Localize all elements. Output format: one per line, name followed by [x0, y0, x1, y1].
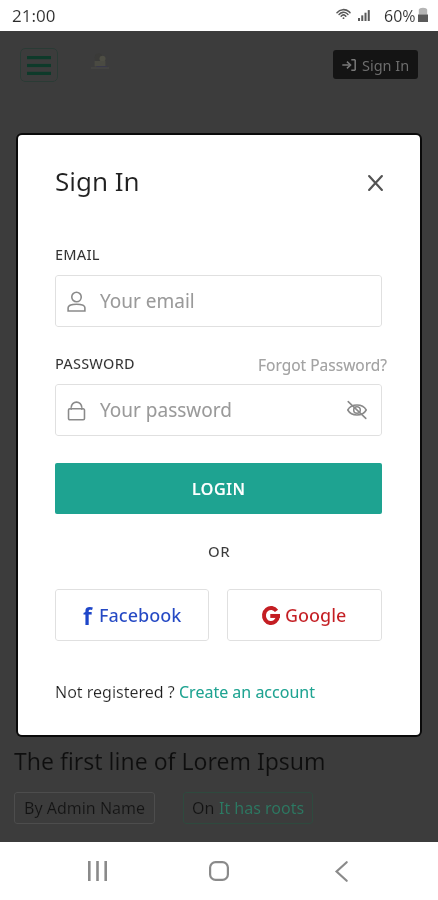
- staticText: PASSWORD: [55, 353, 135, 373]
- button[interactable]: LOGIN: [55, 463, 382, 514]
- staticText: Google: [285, 603, 347, 628]
- staticText: 21:00: [12, 4, 56, 27]
- button[interactable]: f: [55, 589, 209, 641]
- button[interactable]: Create an account: [179, 681, 315, 703]
- staticText: f: [83, 600, 92, 631]
- button[interactable]: Forgot Password?: [258, 354, 388, 375]
- button[interactable]: Show password: [343, 396, 371, 424]
- staticText: Facebook: [99, 603, 182, 628]
- staticText: Sign In: [55, 163, 140, 198]
- staticText: LOGIN: [192, 478, 246, 500]
- staticText: Create an account: [179, 681, 315, 703]
- button[interactable]: Sign In: [333, 50, 418, 79]
- staticText: The first line of Lorem Ipsum: [14, 745, 326, 776]
- button[interactable]: Close: [357, 164, 394, 201]
- button[interactable]: Menu: [20, 48, 58, 82]
- staticText: EMAIL: [55, 244, 100, 264]
- button[interactable]: By Admin Name: [14, 792, 155, 824]
- staticText: Forgot Password?: [258, 354, 388, 375]
- button[interactable]: On: [183, 792, 313, 824]
- staticText: 60%: [384, 5, 416, 27]
- staticText: By Admin Name: [24, 797, 146, 819]
- button[interactable]: Your email: [55, 275, 382, 327]
- staticText: Your password: [100, 397, 343, 423]
- staticText: OR: [208, 541, 231, 561]
- button[interactable]: Home: [195, 847, 243, 895]
- button[interactable]: Google: [227, 589, 382, 641]
- staticText: It has roots: [219, 797, 305, 819]
- staticText: Your email: [100, 288, 195, 314]
- staticText: Not registered ?: [55, 681, 179, 703]
- staticText: On: [192, 797, 219, 819]
- button[interactable]: Back: [317, 847, 365, 895]
- button[interactable]: Recents: [73, 847, 121, 895]
- button[interactable]: Your password: [55, 384, 382, 436]
- staticText: Sign In: [362, 55, 410, 75]
